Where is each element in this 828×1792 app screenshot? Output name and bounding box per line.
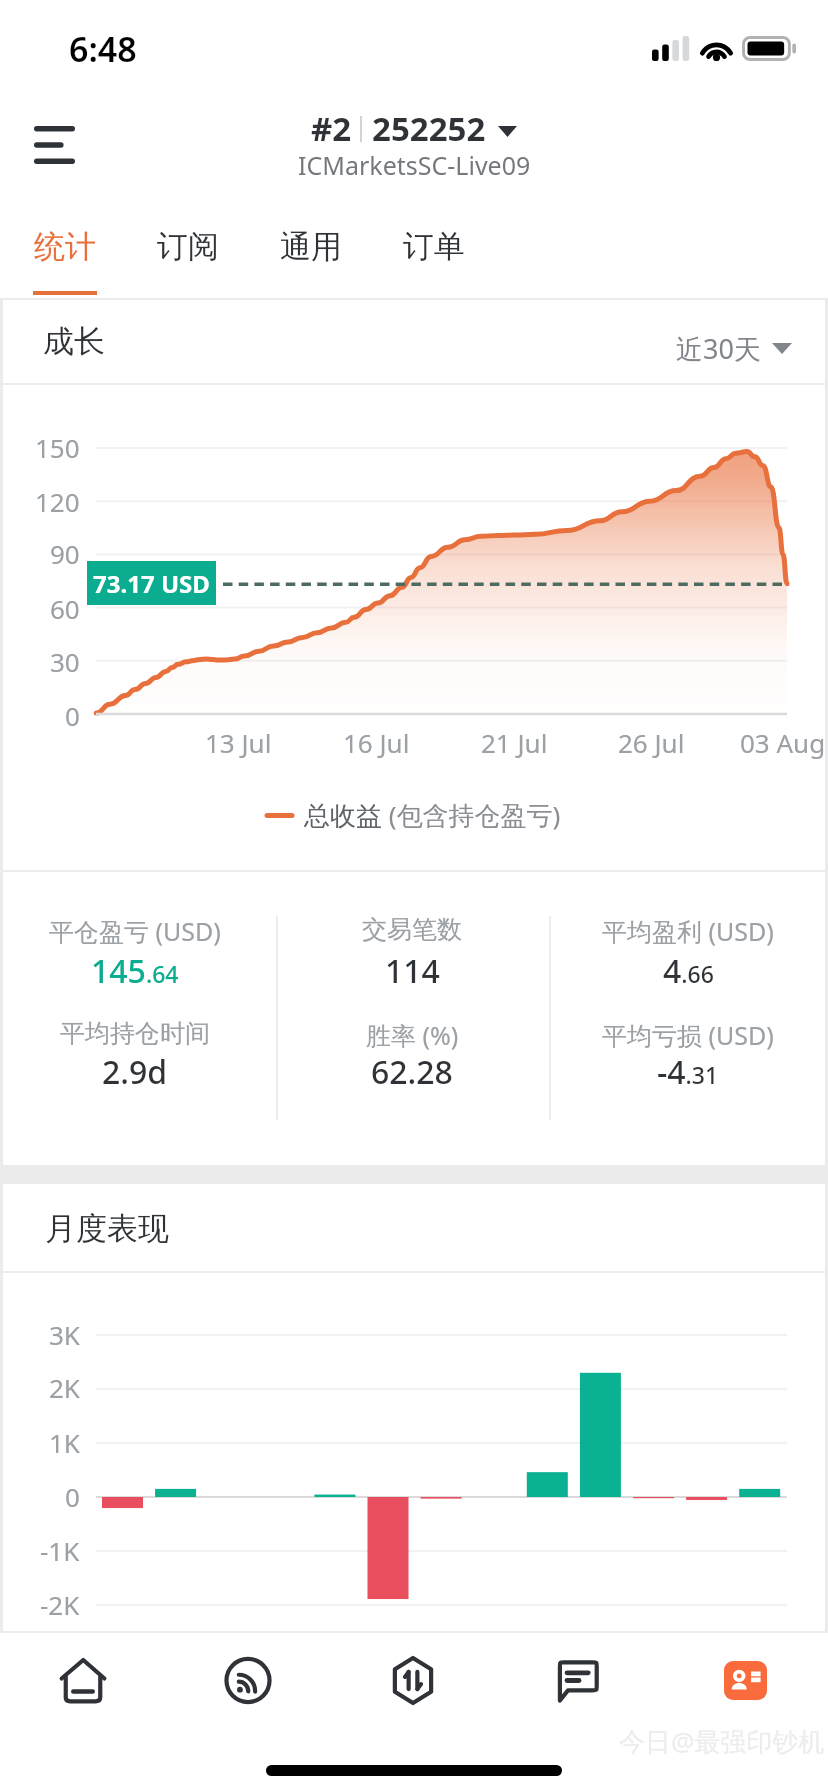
staticText: #2	[311, 106, 352, 151]
staticText: 总收益 (包含持仓盈亏)	[304, 797, 561, 833]
staticText: 2.9d	[102, 1050, 168, 1094]
staticText: 订阅	[157, 227, 219, 266]
button[interactable]: Menu	[14, 105, 94, 185]
staticText: 平均亏损 (USD)	[602, 1018, 774, 1052]
button[interactable]: 订阅	[126, 198, 249, 298]
staticText: -1K	[40, 1533, 80, 1568]
staticText: 6:48	[69, 26, 137, 72]
staticText: 03 Aug	[740, 725, 826, 760]
staticText: 16 Jul	[343, 725, 410, 760]
staticText: 近30天	[676, 330, 761, 367]
button[interactable]: 近30天	[672, 326, 796, 371]
button[interactable]: Chat	[496, 1633, 662, 1728]
staticText: 4.66	[663, 949, 714, 993]
staticText: 统计	[34, 227, 96, 266]
button[interactable]: Trade	[330, 1633, 496, 1728]
staticText: 0	[65, 698, 80, 733]
button[interactable]: Accounts	[662, 1633, 828, 1728]
staticText: 平仓盈亏 (USD)	[49, 914, 221, 948]
staticText: 3K	[49, 1317, 80, 1352]
staticText: -4.31	[657, 1050, 719, 1094]
staticText: 30	[50, 644, 80, 679]
staticText: 114	[385, 949, 440, 993]
staticText: 月度表现	[45, 1209, 169, 1248]
staticText: 平均持仓时间	[60, 1018, 210, 1049]
staticText: 73.17 USD	[93, 567, 210, 600]
staticText: 2K	[49, 1370, 80, 1405]
staticText: 21 Jul	[481, 725, 548, 760]
staticText: 13 Jul	[205, 725, 272, 760]
staticText: 26 Jul	[618, 725, 685, 760]
staticText: 通用	[280, 227, 342, 266]
staticText: 1K	[49, 1425, 80, 1460]
staticText: 胜率 (%)	[366, 1018, 459, 1052]
staticText: 62.28	[371, 1050, 453, 1094]
button[interactable]: Signals	[165, 1633, 330, 1728]
staticText: 交易笔数	[362, 914, 462, 945]
staticText: 0	[65, 1479, 80, 1514]
staticText: 今日@最强印钞机	[619, 1723, 825, 1759]
staticText: -2K	[40, 1587, 80, 1622]
staticText: ICMarketsSC-Live09	[298, 148, 531, 182]
staticText: 60	[50, 591, 80, 626]
button[interactable]: 统计	[3, 198, 126, 298]
staticText: 90	[50, 536, 80, 571]
button[interactable]: 订单	[372, 198, 495, 298]
staticText: 订单	[403, 227, 465, 266]
staticText: 252252	[372, 106, 486, 151]
button[interactable]: 通用	[249, 198, 372, 298]
staticText: 平均盈利 (USD)	[602, 914, 774, 948]
staticText: 150	[35, 430, 80, 465]
staticText: 120	[35, 484, 80, 519]
staticText: 成长	[43, 322, 105, 361]
staticText: 145.64	[91, 949, 179, 993]
button[interactable]: Home	[0, 1633, 165, 1728]
